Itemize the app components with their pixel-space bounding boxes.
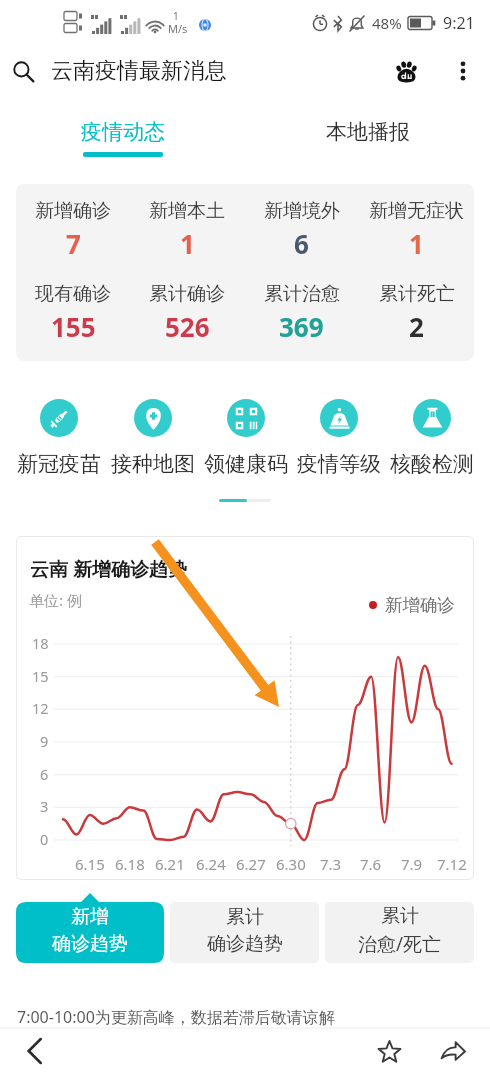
staticText: 7.6 [360,854,382,874]
button[interactable]: Favorite [370,1032,408,1070]
staticText: 疫情等级 [297,451,381,477]
staticText: 接种地图 [111,451,195,477]
staticText: 单位: 例 [29,590,82,610]
staticText: 累计 [226,905,264,929]
staticText: 7:00-10:00为更新高峰，数据若滞后敬请谅解 [17,1006,335,1028]
staticText: 3 [40,796,49,816]
button[interactable]: Search [8,56,38,86]
staticText: 新增确诊 [35,199,111,223]
staticText: 6.27 [236,854,266,874]
staticText: 确诊趋势 [52,932,128,956]
staticText: 15 [32,666,49,686]
button[interactable]: 疫情动态 [0,97,245,166]
staticText: 6 [294,226,309,261]
staticText: 6.30 [276,854,306,874]
staticText: 1 [173,9,179,23]
staticText: 48% [372,13,402,33]
button[interactable]: 疫情等级 [292,399,385,477]
staticText: M/s [168,21,188,36]
staticText: 累计 [381,904,419,928]
staticText: 新增确诊 [385,594,455,616]
staticText: 现有确诊 [35,282,111,306]
staticText: 155 [51,309,96,344]
button[interactable]: 本地播报 [245,97,490,166]
button[interactable]: 新增 [16,893,164,963]
staticText: 治愈/死亡 [358,931,442,957]
staticText: 369 [279,309,324,344]
staticText: 云南 新增确诊趋势 [30,556,187,582]
staticText: 9:21 [443,12,475,34]
button[interactable]: Baidu app [389,54,423,88]
button[interactable]: Share [434,1032,472,1070]
staticText: 新冠疫苗 [17,451,101,477]
staticText: 疫情动态 [81,119,165,145]
button[interactable]: 核酸检测 [385,399,478,477]
staticText: 新增境外 [264,199,340,223]
staticText: 新增 [71,905,109,929]
staticText: 18 [32,633,49,653]
staticText: 新增本土 [149,199,225,223]
staticText: 累计确诊 [149,282,225,306]
staticText: 6.21 [155,854,185,874]
button[interactable]: 接种地图 [106,399,199,477]
staticText: 0 [40,829,49,849]
button[interactable]: More options [448,56,478,86]
staticText: 核酸检测 [390,451,474,477]
staticText: 确诊趋势 [207,932,283,956]
staticText: 1 [180,226,195,261]
staticText: 累计死亡 [379,282,455,306]
staticText: 7.3 [320,854,342,874]
button[interactable]: Back [16,1032,54,1070]
staticText: 7 [66,226,81,261]
staticText: 9 [40,731,49,751]
button[interactable]: 累计 [325,893,474,963]
staticText: 2 [409,309,424,344]
staticText: 累计治愈 [264,282,340,306]
staticText: 本地播报 [326,119,410,145]
staticText: 526 [165,309,210,344]
staticText: 新增无症状 [369,199,464,223]
staticText: 1 [409,226,424,261]
staticText: 6 [40,764,49,784]
staticText: 领健康码 [204,451,288,477]
staticText: 6.18 [115,854,145,874]
button[interactable]: 新冠疫苗 [12,399,106,477]
staticText: 6.24 [196,854,226,874]
staticText: 6.15 [75,854,105,874]
staticText: 7.12 [437,854,467,874]
staticText: 云南疫情最新消息 [51,57,227,85]
button[interactable]: 累计 [170,893,319,963]
staticText: 7.9 [401,854,423,874]
button[interactable]: 领健康码 [199,399,292,477]
staticText: 12 [32,698,49,718]
